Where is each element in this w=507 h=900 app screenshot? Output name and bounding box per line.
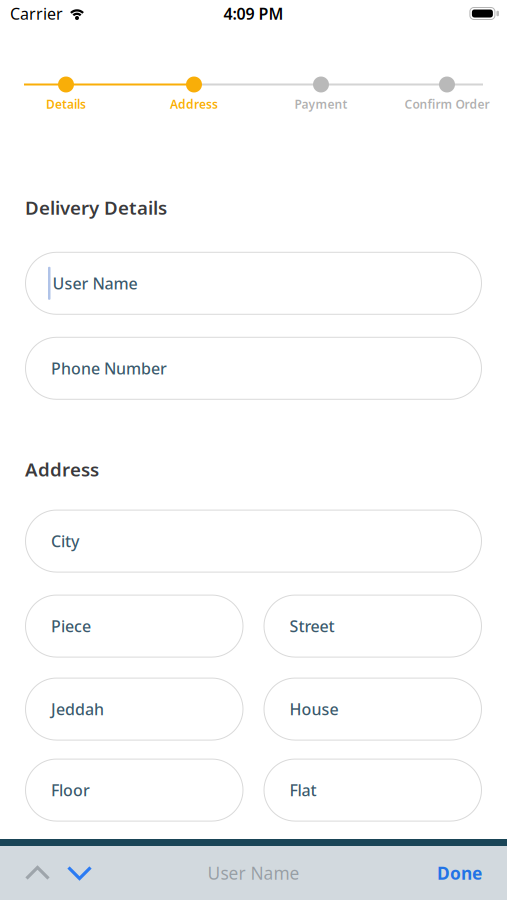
staticText: Carrier bbox=[10, 3, 63, 24]
button[interactable]: Street bbox=[263, 595, 482, 658]
staticText: Details bbox=[46, 96, 86, 112]
staticText: City bbox=[51, 530, 79, 552]
staticText: Payment bbox=[294, 96, 347, 112]
staticText: House bbox=[289, 698, 338, 720]
staticText: User Name bbox=[52, 273, 137, 294]
staticText: Confirm Order bbox=[404, 96, 489, 112]
staticText: Delivery Details bbox=[25, 195, 167, 220]
staticText: Jeddah bbox=[51, 698, 104, 720]
button[interactable]: Done bbox=[437, 861, 482, 884]
staticText: Floor bbox=[51, 779, 90, 801]
staticText: Phone Number bbox=[51, 358, 167, 379]
button[interactable]: Jeddah bbox=[25, 678, 243, 741]
button[interactable]: House bbox=[263, 678, 482, 741]
staticText: Street bbox=[289, 615, 334, 637]
staticText: Done bbox=[437, 861, 482, 884]
staticText: Address bbox=[25, 457, 99, 482]
staticText: Piece bbox=[51, 615, 91, 637]
button[interactable]: Flat bbox=[263, 759, 482, 822]
button[interactable]: Piece bbox=[25, 595, 243, 658]
button[interactable]: City bbox=[25, 510, 482, 573]
staticText: User Name bbox=[207, 861, 299, 884]
staticText: 4:09 PM bbox=[223, 3, 283, 24]
button[interactable]: Floor bbox=[25, 759, 243, 822]
button[interactable]: Phone Number bbox=[25, 337, 482, 400]
button[interactable]: Previous field bbox=[25, 866, 50, 880]
staticText: Address bbox=[170, 96, 218, 112]
staticText: Flat bbox=[289, 779, 316, 801]
button[interactable]: Next field bbox=[67, 866, 92, 880]
button[interactable]: User Name bbox=[25, 252, 482, 315]
